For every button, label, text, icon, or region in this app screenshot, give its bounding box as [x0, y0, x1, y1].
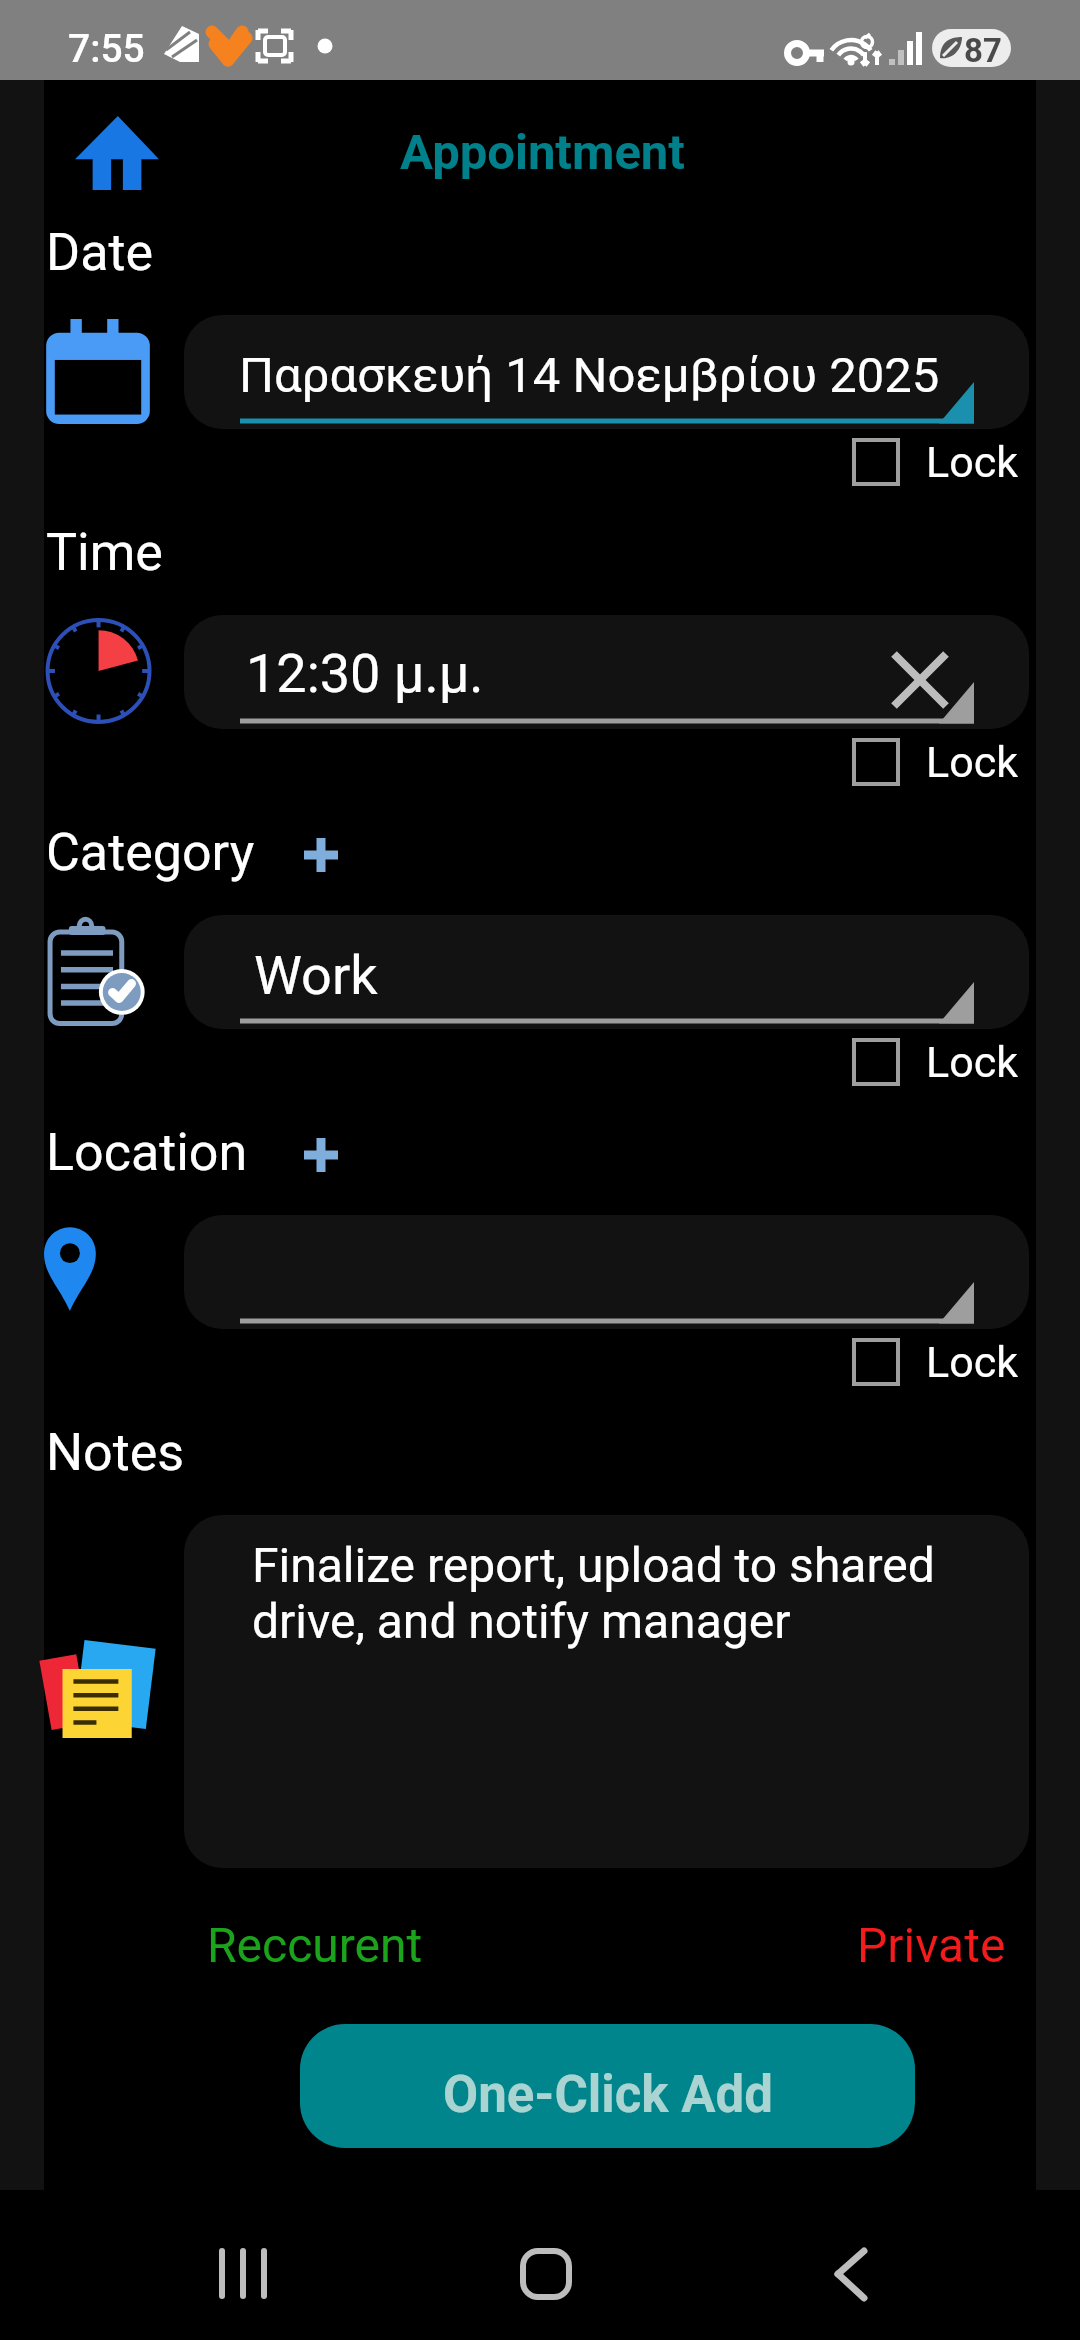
staticText: One-Click Add — [443, 2065, 773, 2125]
staticText: Lock — [926, 1037, 1018, 1087]
staticText: Lock — [926, 437, 1018, 487]
button[interactable]: Back — [774, 2231, 904, 2325]
button[interactable]: 12:30 μ.μ. — [184, 615, 1029, 729]
staticText: 87 — [964, 31, 1002, 67]
staticText: Category — [46, 822, 255, 883]
staticText: Date — [46, 222, 153, 283]
staticText: Location — [46, 1122, 248, 1183]
staticText: Reccurent — [207, 1917, 423, 1973]
staticText: 7:55 — [68, 26, 145, 72]
button[interactable]: Lock — [852, 1337, 1018, 1387]
staticText: 12:30 μ.μ. — [246, 642, 484, 705]
button[interactable]: Private — [857, 1917, 1006, 1973]
button[interactable]: Lock — [852, 737, 1018, 787]
button[interactable]: Add Category — [296, 830, 346, 880]
button[interactable]: Home — [478, 2231, 608, 2325]
button[interactable]: Lock — [852, 1037, 1018, 1087]
button[interactable]: Add Location — [296, 1130, 346, 1180]
button[interactable]: Παρασκευή 14 Νοεμβρίου 2025 — [184, 315, 1029, 429]
button[interactable]: Lock — [852, 437, 1018, 487]
button[interactable]: Recent apps — [180, 2231, 310, 2325]
button[interactable] — [184, 1215, 1029, 1329]
staticText: Lock — [926, 1337, 1018, 1387]
staticText: Work — [254, 944, 378, 1007]
staticText: Appointment — [400, 124, 685, 181]
button[interactable]: Home — [75, 116, 159, 190]
staticText: Παρασκευή 14 Νοεμβρίου 2025 — [239, 347, 940, 404]
staticText: Finalize report, upload to shared drive,… — [252, 1537, 952, 1650]
staticText: Time — [46, 522, 163, 583]
button[interactable]: One-Click Add — [300, 2024, 915, 2148]
staticText: Notes — [46, 1422, 185, 1483]
staticText: Lock — [926, 737, 1018, 787]
staticText: Private — [857, 1917, 1006, 1973]
button[interactable]: Work — [184, 915, 1029, 1029]
button[interactable]: Finalize report, upload to shared drive,… — [184, 1515, 1029, 1868]
button[interactable]: Reccurent — [207, 1917, 423, 1973]
